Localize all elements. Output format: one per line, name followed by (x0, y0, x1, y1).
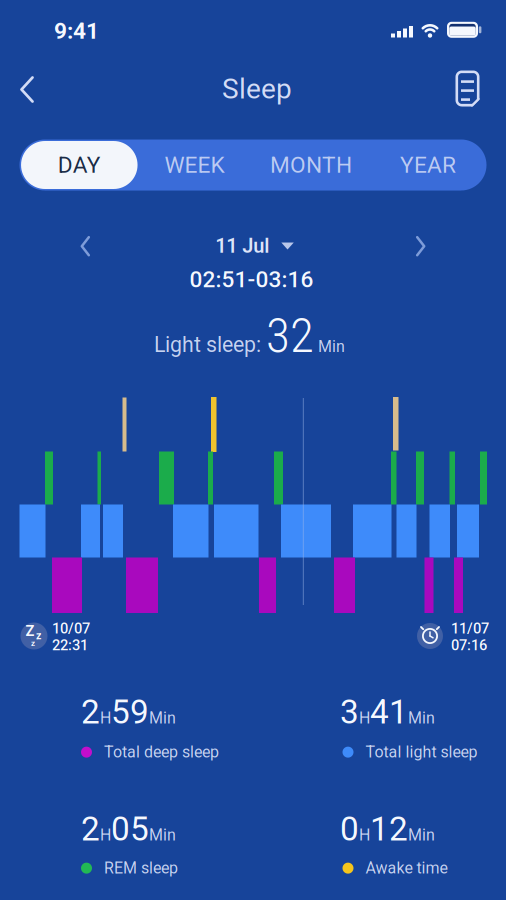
staticText: Min (408, 826, 435, 844)
staticText: 05 (111, 810, 149, 848)
staticText: 3 (340, 693, 359, 731)
staticText: H (359, 826, 370, 844)
button[interactable]: Back (5, 67, 49, 111)
staticText: Min (149, 709, 176, 727)
staticText: 11 Jul (215, 235, 269, 257)
staticText: Light sleep: (154, 332, 266, 357)
staticText: 0 (340, 810, 359, 848)
staticText: 07:16 (451, 637, 487, 654)
staticText: Z (25, 623, 34, 639)
staticText: Total light sleep (365, 743, 477, 761)
staticText: DAY (58, 152, 101, 178)
button[interactable]: Select date (215, 226, 294, 266)
button[interactable]: Previous day (65, 226, 105, 266)
staticText: z (36, 629, 41, 642)
staticText: H (359, 709, 370, 727)
staticText: Total deep sleep (104, 743, 219, 761)
staticText: 9:41 (54, 18, 99, 44)
staticText: 2 (81, 810, 100, 848)
staticText: Sleep (222, 73, 292, 105)
staticText: REM sleep (104, 859, 178, 877)
button[interactable]: Next day (401, 226, 441, 266)
button[interactable]: Sleep notes (445, 66, 489, 110)
button[interactable]: MONTH (253, 139, 369, 190)
staticText: Awake time (365, 859, 447, 877)
staticText: Min (408, 709, 435, 727)
staticText: Min (314, 337, 345, 356)
staticText: 32 (266, 307, 314, 364)
staticText: z (31, 638, 35, 647)
staticText: 2 (81, 693, 100, 731)
staticText: YEAR (400, 152, 456, 178)
staticText: 11/07 (451, 620, 489, 637)
staticText: 59 (111, 693, 149, 731)
staticText: 02:51-03:16 (189, 267, 313, 292)
staticText: Min (149, 826, 176, 844)
staticText: 10/07 (52, 620, 90, 637)
staticText: MONTH (270, 152, 352, 178)
staticText: 12 (370, 810, 408, 848)
button[interactable]: DAY (21, 139, 137, 190)
button[interactable]: WEEK (136, 139, 252, 190)
staticText: 22:31 (52, 637, 88, 654)
button[interactable]: YEAR (370, 139, 486, 190)
staticText: H (100, 709, 111, 727)
staticText: H (100, 826, 111, 844)
staticText: 41 (370, 693, 408, 731)
staticText: WEEK (164, 152, 224, 178)
